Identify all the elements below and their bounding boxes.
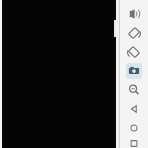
button[interactable]: Zoom — [126, 82, 142, 98]
button[interactable]: Back — [126, 101, 142, 117]
button[interactable]: Take screenshot — [126, 63, 142, 79]
button[interactable] — [3, 0, 115, 148]
button[interactable]: Rotate left — [126, 25, 142, 41]
button[interactable]: Rotate right — [126, 44, 142, 60]
button[interactable]: Overview — [126, 139, 142, 148]
button[interactable]: Volume up — [126, 6, 142, 22]
button[interactable]: Home — [126, 120, 142, 136]
